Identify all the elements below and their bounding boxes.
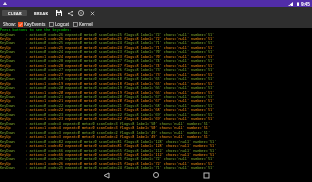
staticText: KeyUp : action=1 code=23 repeat=0 meta=0… xyxy=(0,116,215,121)
staticText: KeyDown : action=0 code=26 repeat=0 meta… xyxy=(0,156,215,161)
staticText: KeyDown : action=0 code=66 repeat=0 meta… xyxy=(0,148,217,153)
button[interactable]: Recents xyxy=(200,169,212,181)
button[interactable]: Share xyxy=(67,10,73,16)
staticText: KeyDown : action=0 code=24 repeat=0 meta… xyxy=(0,49,215,54)
staticText: KeyDown : action=0 code=20 repeat=0 meta… xyxy=(0,85,215,90)
staticText: Show: xyxy=(3,21,16,27)
staticText: KeyDown : action=0 code=26 repeat=0 meta… xyxy=(0,32,215,37)
staticText: KeyDown : action=0 code=21 repeat=0 meta… xyxy=(0,94,215,99)
staticText: KeyUp : action=1 code=25 repeat=0 meta=0… xyxy=(0,45,215,50)
staticText: KeyUp : action=1 code=4 repeat=0 meta=0 … xyxy=(0,125,210,130)
staticText: 9:45 xyxy=(301,1,310,7)
button[interactable]: Kernel xyxy=(72,21,93,27)
staticText: KeyUp : action=1 code=28 repeat=0 meta=0… xyxy=(0,63,215,68)
staticText: KeyUp : action=1 code=21 repeat=0 meta=0… xyxy=(0,98,215,103)
staticText: BREAK xyxy=(34,11,49,16)
staticText: KeyDown : action=0 code=82 repeat=0 meta… xyxy=(0,139,217,144)
button[interactable]: Save xyxy=(56,10,62,16)
button[interactable]: CLEAR xyxy=(2,10,27,16)
button[interactable]: KeyEvents xyxy=(17,21,46,27)
staticText: KeyUp : action=1 code=66 repeat=0 meta=0… xyxy=(0,152,217,157)
staticText: KeyEvents xyxy=(24,21,46,27)
button[interactable]: BREAK xyxy=(27,10,55,16)
button[interactable]: Back xyxy=(100,169,112,181)
staticText: KeyUp : action=1 code=24 repeat=0 meta=0… xyxy=(0,54,215,59)
staticText: Kernel xyxy=(79,21,93,27)
staticText: KeyUp : action=1 code=27 repeat=0 meta=0… xyxy=(0,72,215,77)
button[interactable]: Close xyxy=(89,10,95,16)
staticText: KeyUp : action=1 code=26 repeat=0 meta=0… xyxy=(0,36,215,41)
staticText: KeyUp : action=1 code=82 repeat=0 meta=0… xyxy=(0,143,217,148)
staticText: KeyDown : action=0 code=25 repeat=0 meta… xyxy=(0,40,215,45)
staticText: KeyDown : action=0 code=25 repeat=0 meta… xyxy=(0,165,215,169)
staticText: KeyDown : action=0 code=28 repeat=0 meta… xyxy=(0,58,215,63)
staticText: KeyUp : action=1 code=19 repeat=0 meta=0… xyxy=(0,81,215,86)
staticText: Press buttons to see the keycodes: xyxy=(0,28,72,32)
staticText: KeyDown : action=0 code=3 repeat=0 meta=… xyxy=(0,130,210,135)
staticText: KeyUp : action=1 code=20 repeat=0 meta=0… xyxy=(0,90,215,95)
staticText: Logcat xyxy=(55,21,70,27)
button[interactable]: Logcat xyxy=(48,21,70,27)
staticText: KeyDown : action=0 code=23 repeat=0 meta… xyxy=(0,112,215,117)
staticText: KeyDown : action=0 code=22 repeat=0 meta… xyxy=(0,103,215,108)
staticText: KeyUp : action=1 code=26 repeat=0 meta=0… xyxy=(0,161,215,166)
staticText: KeyDown : action=0 code=4 repeat=0 meta=… xyxy=(0,121,210,126)
staticText: KeyDown : action=0 code=27 repeat=0 meta… xyxy=(0,67,215,72)
staticText: CLEAR xyxy=(8,11,22,16)
staticText: KeyUp : action=1 code=3 repeat=0 meta=0 … xyxy=(0,134,210,139)
button[interactable]: Home xyxy=(150,169,162,181)
staticText: KeyDown : action=0 code=19 repeat=0 meta… xyxy=(0,76,215,81)
button[interactable]: Info xyxy=(78,10,84,16)
staticText: KeyUp : action=1 code=22 repeat=0 meta=0… xyxy=(0,107,215,112)
